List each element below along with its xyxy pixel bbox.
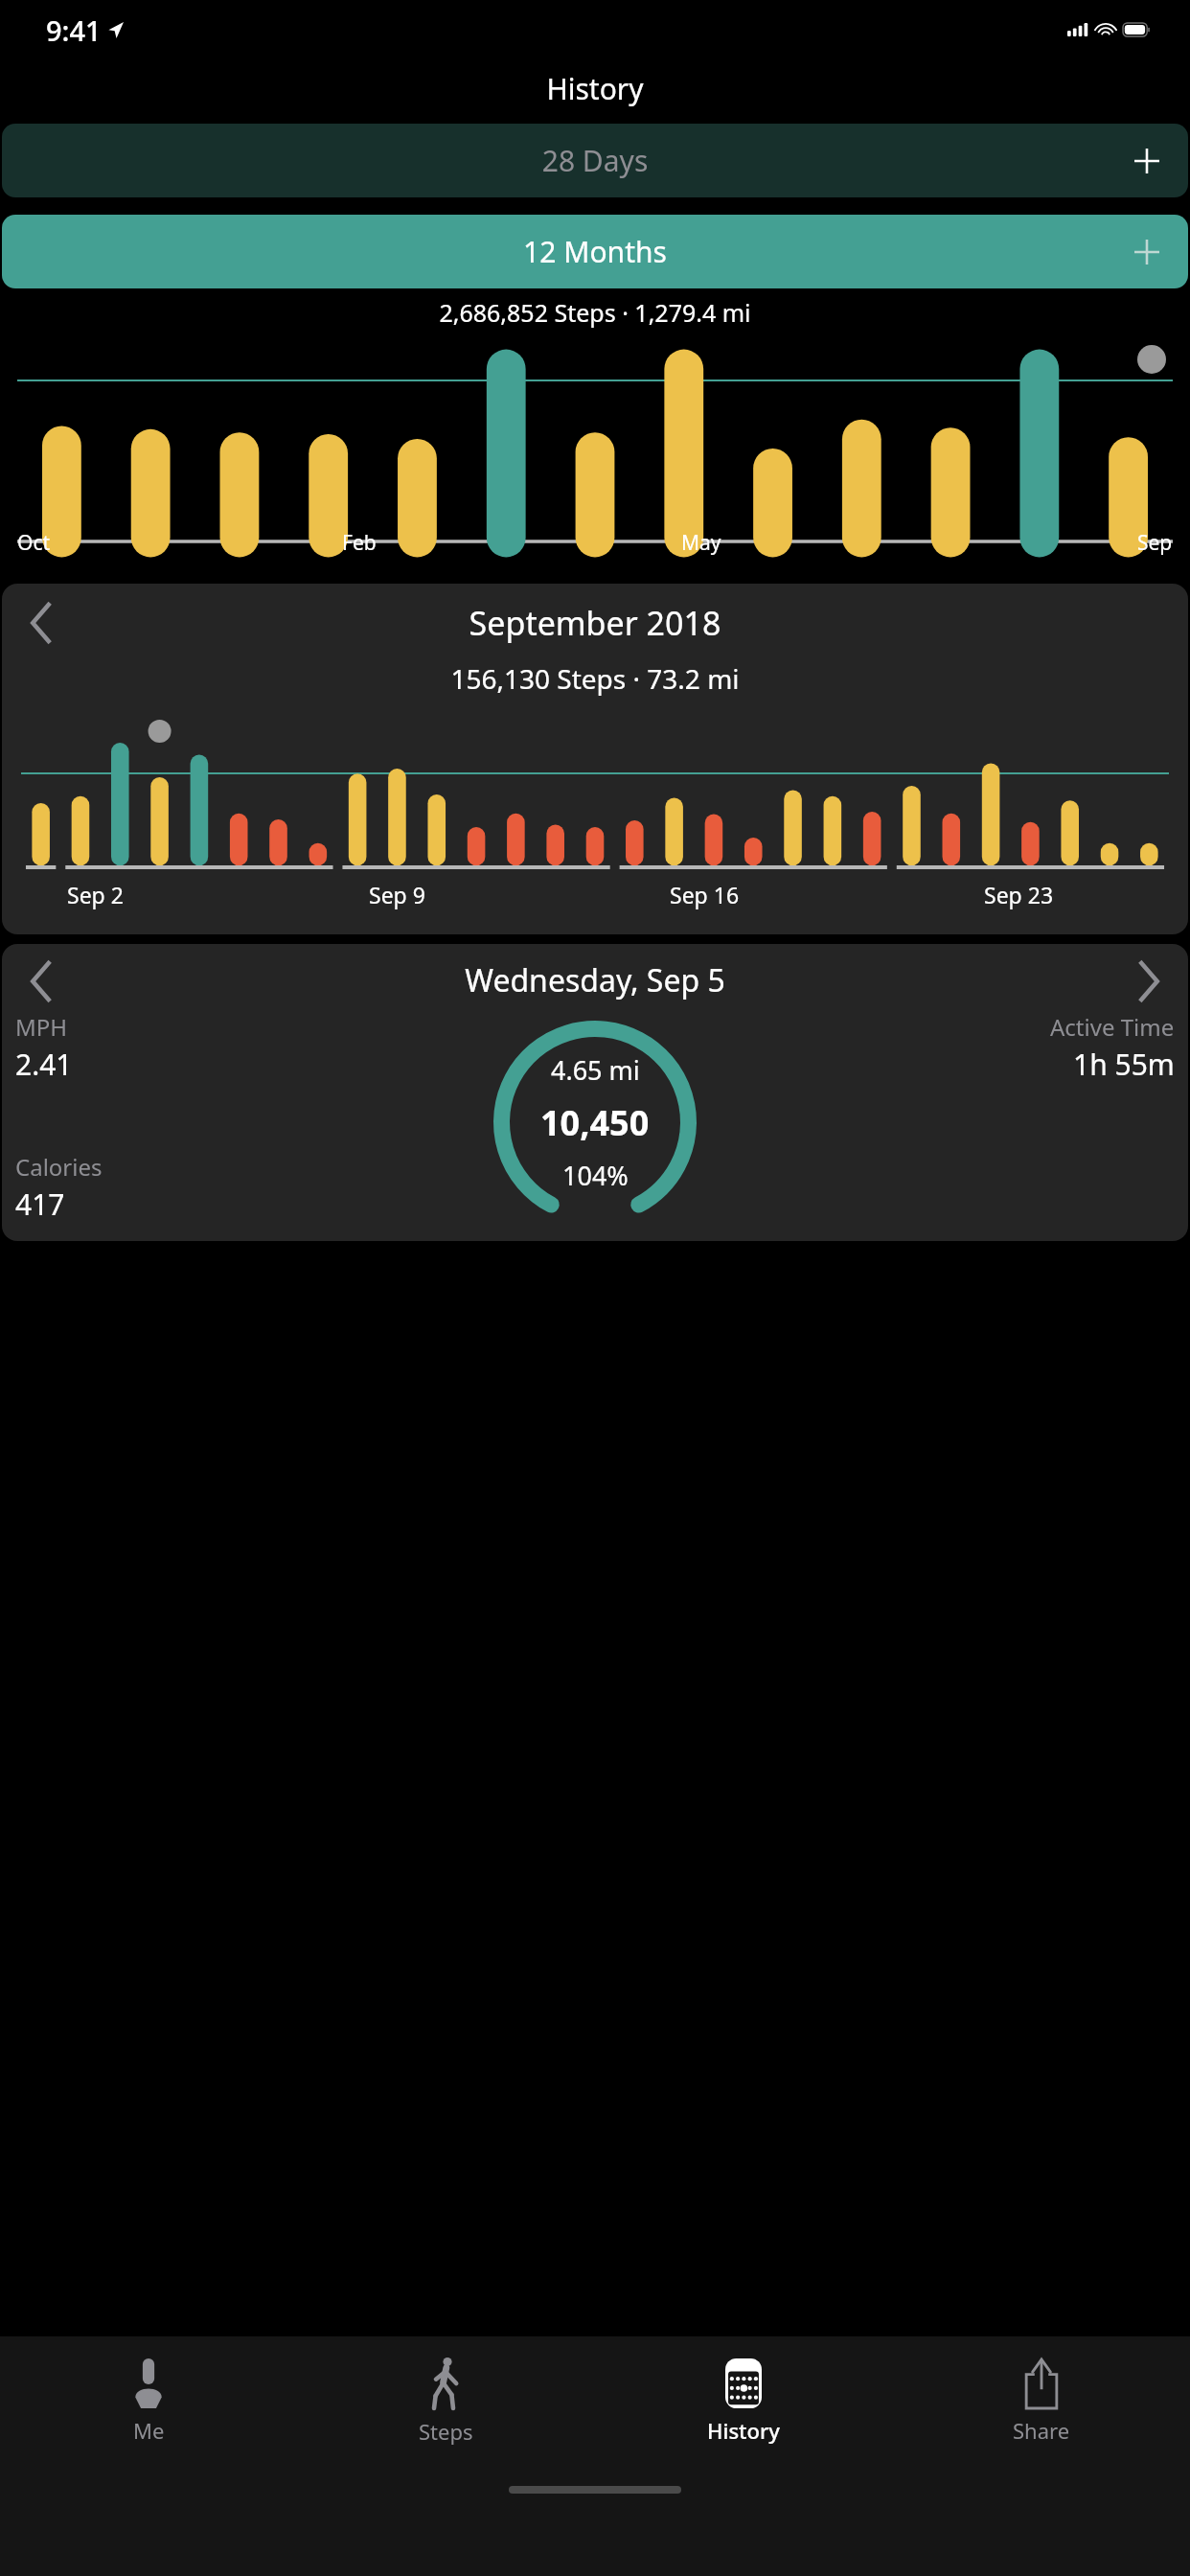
staticText: Sep — [1137, 529, 1173, 557]
staticText: Wednesday, Sep 5 — [2, 959, 1188, 1001]
staticText: Sep 16 — [670, 880, 740, 909]
staticText: 2,686,852 Steps · 1,279.4 mi — [0, 296, 1190, 329]
button[interactable]: 12 Months — [2, 215, 1188, 288]
button[interactable]: History — [594, 2336, 892, 2461]
button[interactable]: Previous day — [2, 944, 1188, 1241]
staticText: 2.41 — [15, 1045, 73, 1084]
button[interactable]: Share — [892, 2336, 1190, 2461]
button[interactable]: Me — [0, 2336, 297, 2461]
staticText: Sep 23 — [984, 880, 1054, 909]
staticText: 28 Days — [2, 141, 1188, 180]
staticText: 9:41 — [46, 11, 102, 49]
staticText: Sep 9 — [369, 880, 425, 909]
staticText: Me — [133, 2416, 165, 2445]
staticText: 1h 55m — [1073, 1045, 1175, 1084]
staticText: September 2018 — [2, 601, 1188, 645]
button[interactable]: Next day — [1127, 959, 1171, 1003]
staticText: 156,130 Steps · 73.2 mi — [2, 660, 1188, 697]
staticText: May — [681, 529, 721, 557]
button[interactable]: 28 Days — [2, 124, 1188, 197]
staticText: Active Time — [1050, 1011, 1175, 1043]
other: Add 12 Months — [1134, 240, 1159, 264]
staticText: 10,450 — [540, 1099, 650, 1146]
staticText: 417 — [15, 1184, 65, 1224]
staticText: 4.65 mi — [551, 1052, 640, 1088]
button[interactable]: Previous day — [19, 959, 63, 1003]
staticText: Feb — [342, 529, 377, 557]
other: Add 28 Days — [1134, 149, 1159, 173]
staticText: History — [0, 69, 1190, 108]
staticText: Calories — [15, 1151, 103, 1183]
staticText: History — [707, 2416, 780, 2445]
button[interactable]: Steps — [297, 2336, 594, 2461]
staticText: Share — [1013, 2416, 1070, 2445]
staticText: 104% — [562, 1158, 629, 1193]
button[interactable]: Previous month — [19, 601, 63, 645]
staticText: Oct — [17, 529, 51, 557]
staticText: 12 Months — [2, 232, 1188, 271]
staticText: Sep 2 — [67, 880, 124, 909]
button[interactable]: Previous month — [2, 584, 1188, 934]
staticText: MPH — [15, 1011, 68, 1043]
staticText: Steps — [419, 2417, 473, 2446]
